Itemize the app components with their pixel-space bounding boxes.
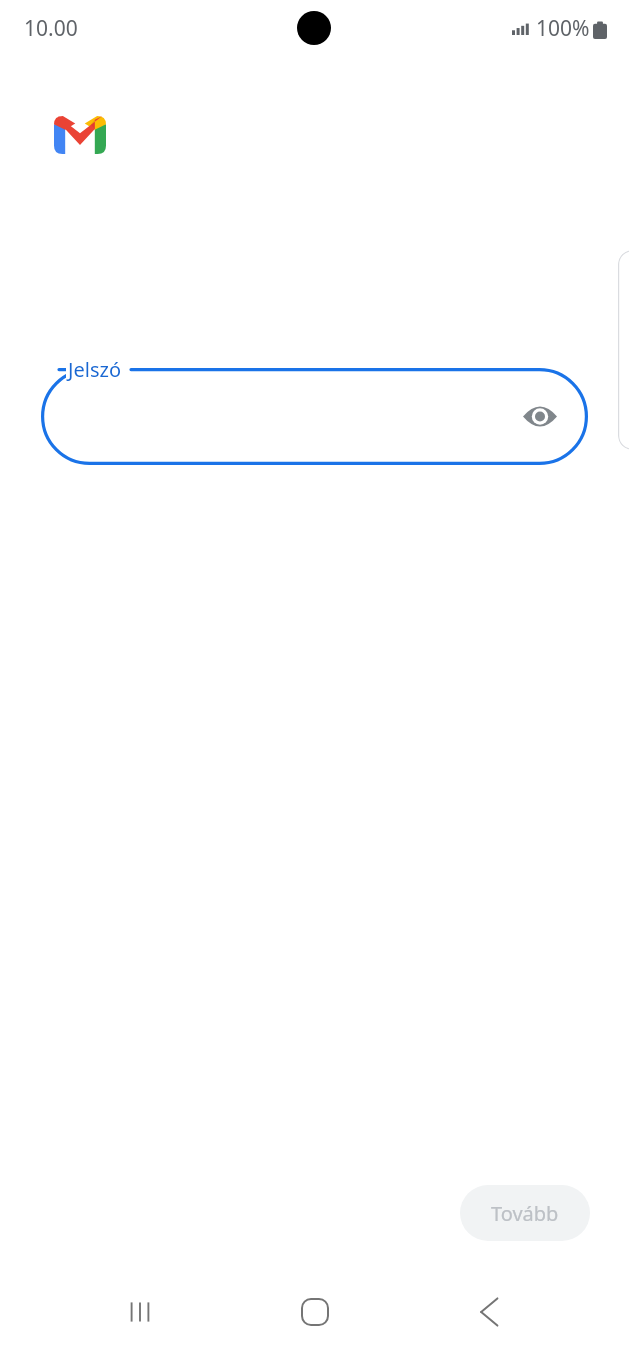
button[interactable]: Tovább xyxy=(460,1185,590,1241)
staticText: 100% xyxy=(536,14,590,43)
staticText: 10.00 xyxy=(24,14,78,43)
button[interactable]: Back xyxy=(441,1274,537,1350)
button[interactable]: Home xyxy=(267,1274,363,1350)
staticText: Jelszó xyxy=(68,356,121,383)
button[interactable]: Recent apps xyxy=(92,1274,188,1350)
button[interactable]: Jelszó xyxy=(41,368,588,465)
staticText: Tovább xyxy=(491,1200,559,1227)
